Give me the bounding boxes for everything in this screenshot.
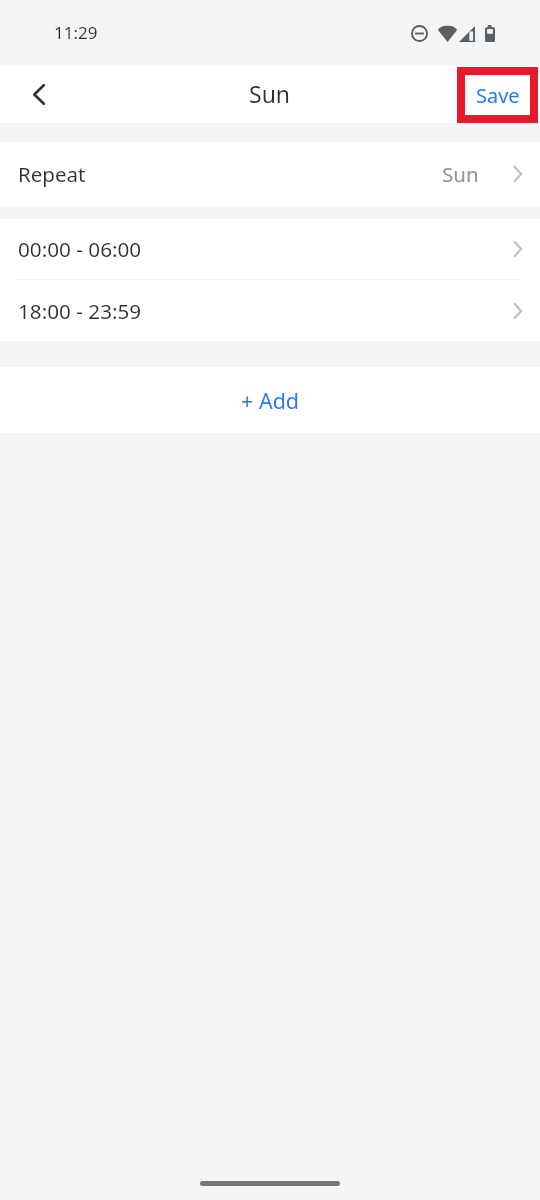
staticText: + Add xyxy=(241,386,300,415)
button[interactable]: Save xyxy=(457,67,538,123)
staticText: Sun xyxy=(249,78,291,109)
staticText: Repeat xyxy=(18,160,86,188)
button[interactable]: 18:00 - 23:59 xyxy=(0,280,540,341)
button[interactable]: 00:00 - 06:00 xyxy=(0,219,540,279)
staticText: Save xyxy=(476,82,520,109)
button[interactable]: + Add xyxy=(0,367,540,433)
button[interactable]: Back xyxy=(0,66,57,123)
staticText: 11:29 xyxy=(54,21,98,44)
staticText: 18:00 - 23:59 xyxy=(18,297,142,325)
button[interactable]: Repeat xyxy=(0,142,540,206)
staticText: Sun xyxy=(442,160,479,188)
staticText: 00:00 - 06:00 xyxy=(18,235,142,263)
